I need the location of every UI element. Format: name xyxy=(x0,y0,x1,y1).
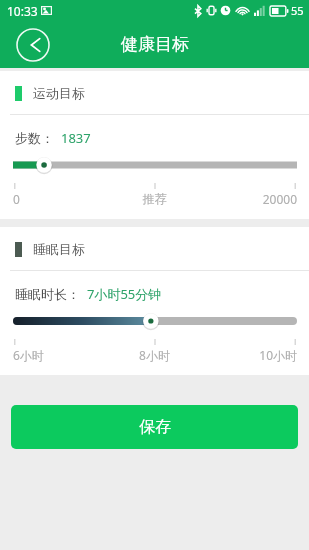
staticText: 1837 xyxy=(61,129,91,147)
button[interactable] xyxy=(13,156,297,174)
staticText: 保存 xyxy=(139,417,171,437)
button[interactable]: 保存 xyxy=(11,405,298,449)
staticText: 睡眠目标 xyxy=(33,241,85,257)
staticText: 10:33 xyxy=(7,3,38,19)
staticText: 睡眠时长： xyxy=(15,286,80,302)
staticText: 7小时55分钟 xyxy=(87,285,162,303)
staticText: 10小时 xyxy=(202,347,297,363)
staticText: 20000 xyxy=(202,191,297,207)
staticText: 0 xyxy=(13,191,107,207)
staticText: 健康目标 xyxy=(121,34,189,55)
staticText: 8小时 xyxy=(107,347,202,363)
staticText: 推荐 xyxy=(107,191,202,206)
staticText: 步数： xyxy=(15,130,54,146)
staticText: 6小时 xyxy=(13,347,107,363)
staticText: 55 xyxy=(291,3,304,18)
button[interactable] xyxy=(13,312,297,330)
button[interactable]: Back xyxy=(16,28,50,62)
staticText: 运动目标 xyxy=(33,85,85,101)
